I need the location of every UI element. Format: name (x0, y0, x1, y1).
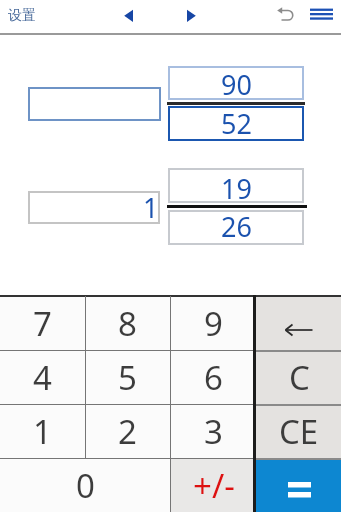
staticText: 3 (204, 409, 223, 454)
staticText: CE (279, 409, 319, 454)
button[interactable]: CE (256, 404, 341, 458)
button[interactable] (303, 1, 339, 29)
staticText: 6 (204, 355, 223, 400)
button[interactable] (115, 1, 143, 31)
staticText: 7 (33, 301, 52, 346)
staticText: 19 (221, 170, 252, 205)
button[interactable]: 4 (0, 350, 85, 404)
button[interactable]: 9 (171, 296, 256, 350)
button[interactable]: 90 (168, 66, 304, 100)
button[interactable] (269, 0, 297, 30)
button[interactable]: 7 (0, 296, 85, 350)
staticText: +/- (193, 463, 235, 508)
button[interactable]: 1 (0, 404, 85, 458)
staticText: C (289, 355, 310, 400)
button[interactable]: 19 (168, 168, 304, 203)
staticText: 52 (221, 105, 252, 140)
button[interactable] (256, 296, 341, 350)
button[interactable]: +/- (171, 458, 256, 512)
staticText: 5 (118, 355, 137, 400)
staticText: 90 (221, 66, 252, 100)
staticText: 2 (118, 409, 137, 454)
staticText: 设置 (8, 7, 36, 25)
button[interactable]: C (256, 350, 341, 404)
button[interactable]: 5 (85, 350, 170, 404)
staticText: 4 (33, 355, 52, 400)
button[interactable] (177, 1, 205, 31)
staticText: 26 (221, 208, 252, 243)
button[interactable]: 2 (85, 404, 170, 458)
staticText: 8 (118, 301, 137, 346)
button[interactable]: 3 (171, 404, 256, 458)
button[interactable]: 26 (168, 210, 304, 245)
button[interactable] (28, 87, 161, 121)
button[interactable]: 52 (168, 106, 304, 141)
button[interactable]: 设置 (4, 3, 40, 29)
button[interactable] (256, 458, 341, 512)
button[interactable]: 1 (28, 191, 160, 224)
staticText: 1 (143, 189, 159, 222)
button[interactable]: 6 (171, 350, 256, 404)
staticText: 1 (33, 409, 52, 454)
staticText: 0 (76, 463, 95, 508)
button[interactable]: 8 (85, 296, 170, 350)
staticText: 9 (204, 301, 223, 346)
button[interactable]: 0 (0, 458, 171, 512)
